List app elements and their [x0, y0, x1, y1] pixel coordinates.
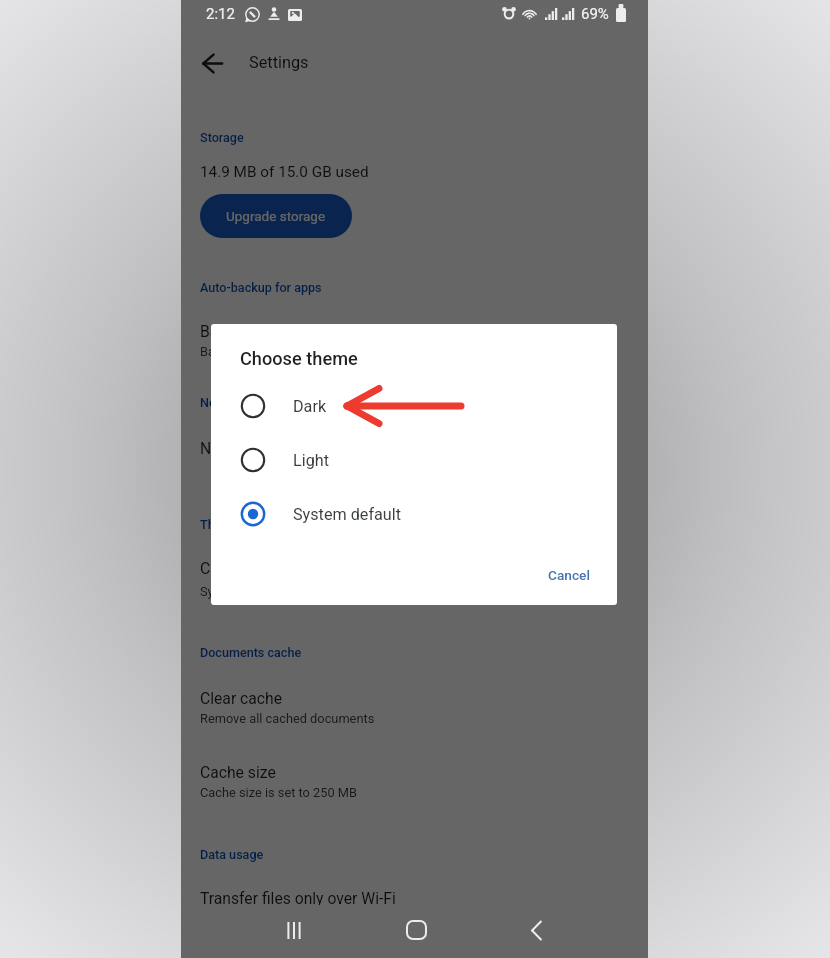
- staticText: 2:12: [206, 5, 235, 23]
- staticText: Cache size: [200, 763, 276, 781]
- button[interactable]: System default: [211, 487, 617, 541]
- staticText: Remove all cached documents: [200, 711, 375, 726]
- staticText: Backup is enabled: [200, 344, 304, 359]
- staticText: System default: [293, 505, 402, 524]
- staticText: Dark: [293, 397, 327, 416]
- staticText: Upgrade storage: [226, 208, 326, 224]
- staticText: Clear cache: [200, 689, 282, 707]
- staticText: Light: [293, 451, 329, 470]
- button[interactable]: Dark: [211, 379, 617, 433]
- staticText: Choose theme: [200, 559, 302, 577]
- staticText: Data usage: [200, 847, 264, 862]
- staticText: Documents cache: [200, 645, 302, 660]
- button[interactable]: Light: [211, 433, 617, 487]
- staticText: System default: [200, 584, 286, 599]
- button[interactable]: Recent apps: [270, 906, 318, 954]
- button[interactable]: Cancel: [538, 557, 600, 593]
- staticText: Choose theme: [240, 348, 358, 369]
- staticText: Notifications: [200, 439, 290, 457]
- staticText: Backup: [200, 322, 252, 340]
- staticText: Cache size is set to 250 MB: [200, 785, 357, 800]
- staticText: Storage: [200, 130, 244, 145]
- staticText: 14.9 MB of 15.0 GB used: [200, 163, 369, 181]
- staticText: Auto-backup for apps: [200, 280, 322, 295]
- button[interactable]: Navigate up: [190, 41, 234, 85]
- staticText: Transfer files only over Wi-Fi: [200, 889, 396, 907]
- button[interactable]: Back: [512, 906, 560, 954]
- staticText: Cancel: [548, 567, 590, 583]
- staticText: Theme: [200, 517, 240, 532]
- staticText: 69%: [581, 5, 609, 23]
- staticText: Notifications: [200, 395, 273, 410]
- staticText: Settings: [249, 53, 309, 72]
- button[interactable]: Home: [392, 906, 440, 954]
- button[interactable]: Upgrade storage: [200, 194, 352, 238]
